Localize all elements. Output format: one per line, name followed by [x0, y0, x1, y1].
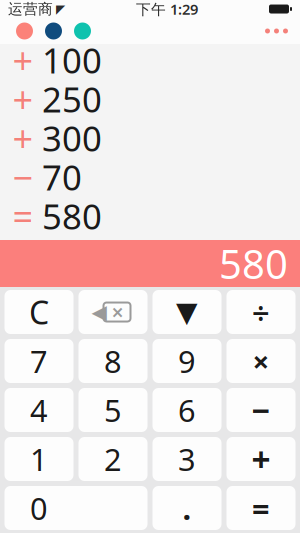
button[interactable]: 9	[152, 339, 221, 383]
button[interactable]: Blue theme	[45, 22, 62, 39]
staticText: 250	[42, 76, 102, 122]
staticText: 5	[104, 390, 122, 430]
staticText: 0	[30, 488, 48, 528]
button[interactable]: ×	[226, 339, 295, 383]
button[interactable]: −	[226, 388, 295, 432]
button[interactable]: 7	[4, 339, 73, 383]
staticText: ×	[111, 298, 123, 326]
button[interactable]: +	[0, 79, 300, 118]
staticText: ÷	[252, 292, 270, 332]
staticText: =	[12, 192, 33, 240]
staticText: 2	[104, 439, 122, 479]
button[interactable]: 4	[4, 388, 73, 432]
button[interactable]: C	[4, 290, 73, 334]
button[interactable]: Hide keyboard	[152, 290, 221, 334]
staticText: +	[251, 437, 270, 481]
button[interactable]: 3	[152, 437, 221, 481]
staticText: .	[182, 488, 191, 528]
staticText: +	[12, 75, 33, 123]
staticText: 70	[42, 154, 82, 200]
staticText: +	[12, 36, 33, 84]
button[interactable]: 1	[4, 437, 73, 481]
staticText: =	[252, 488, 270, 528]
staticText: 4	[30, 390, 48, 430]
staticText: 3	[178, 439, 196, 479]
staticText: 300	[42, 115, 102, 161]
staticText: ×	[252, 341, 269, 380]
button[interactable]: 5	[78, 388, 147, 432]
staticText: 8	[104, 341, 122, 381]
button[interactable]: −	[0, 157, 300, 196]
staticText: ◀	[91, 301, 106, 323]
button[interactable]: .	[152, 486, 221, 530]
staticText: ▼	[176, 296, 198, 328]
staticText: 1	[30, 439, 48, 479]
button[interactable]: 2	[78, 437, 147, 481]
staticText: +	[12, 114, 33, 162]
staticText: ◤	[56, 2, 65, 16]
button[interactable]: Delete	[78, 290, 147, 334]
staticText: 100	[42, 37, 102, 83]
staticText: 6	[178, 390, 196, 430]
staticText: 7	[30, 341, 48, 381]
staticText: 580	[219, 237, 288, 290]
staticText: 下午 1:29	[136, 0, 198, 19]
button[interactable]: Red theme	[16, 22, 33, 39]
staticText: 运营商	[8, 0, 53, 18]
button[interactable]: =	[0, 196, 300, 235]
button[interactable]: ÷	[226, 290, 295, 334]
button[interactable]: 6	[152, 388, 221, 432]
button[interactable]: 8	[78, 339, 147, 383]
button[interactable]: 0	[4, 486, 147, 530]
staticText: −	[251, 389, 270, 431]
button[interactable]: +	[0, 118, 300, 157]
button[interactable]: +	[0, 40, 300, 79]
staticText: C	[29, 291, 49, 333]
button[interactable]: =	[226, 486, 295, 530]
button[interactable]: Teal theme	[74, 22, 91, 39]
staticText: 580	[42, 193, 102, 239]
button[interactable]: +	[226, 437, 295, 481]
button[interactable]: More options	[253, 18, 300, 44]
staticText: 9	[178, 341, 196, 381]
staticText: −	[12, 153, 33, 201]
